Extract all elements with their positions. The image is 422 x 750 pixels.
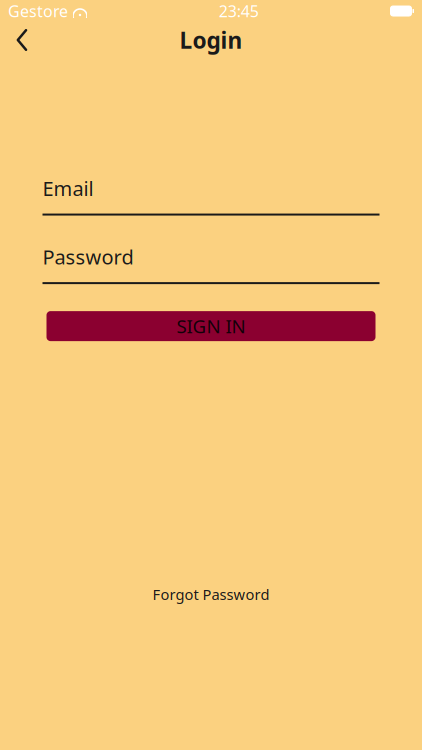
button[interactable]: Forgot Password bbox=[142, 578, 279, 610]
staticText: Login bbox=[179, 25, 242, 55]
staticText: Forgot Password bbox=[152, 584, 269, 604]
button[interactable]: SIGN IN bbox=[46, 311, 375, 341]
staticText: SIGN IN bbox=[176, 314, 245, 338]
button[interactable]: Back bbox=[0, 22, 44, 58]
staticText: Password bbox=[42, 244, 133, 270]
staticText: 23:45 bbox=[219, 0, 259, 22]
staticText: Gestore bbox=[8, 0, 68, 22]
staticText: Email bbox=[42, 175, 93, 202]
